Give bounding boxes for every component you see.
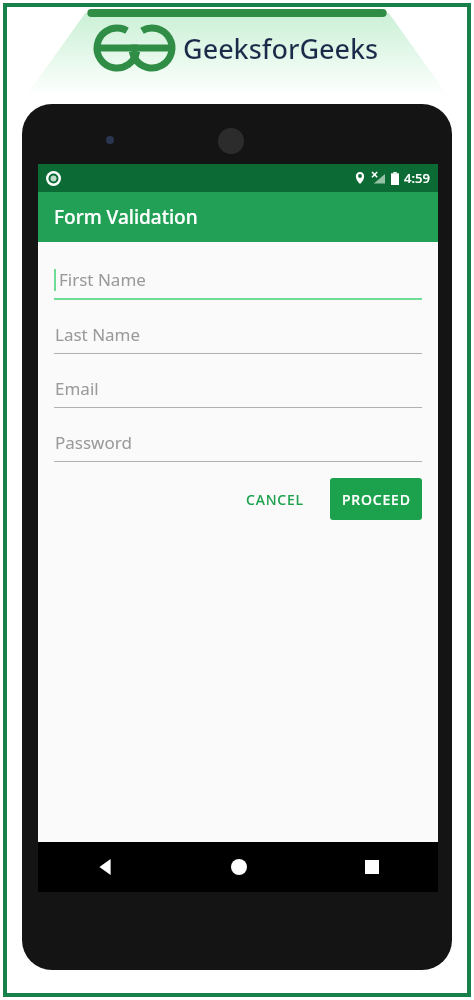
button[interactable]: CANCEL — [234, 479, 316, 520]
button[interactable]: Last Name — [54, 323, 422, 354]
staticText: Last Name — [55, 323, 141, 346]
staticText: Form Validation — [54, 204, 198, 230]
staticText: 4:59 — [404, 169, 430, 187]
button[interactable]: First Name — [54, 268, 422, 300]
staticText: PROCEED — [342, 490, 411, 509]
button[interactable]: Password — [54, 431, 422, 462]
staticText: Password — [55, 431, 132, 454]
button[interactable]: Back — [38, 842, 172, 892]
button[interactable]: Email — [54, 377, 422, 408]
button[interactable]: Home — [172, 842, 305, 892]
staticText: CANCEL — [246, 490, 304, 509]
button[interactable]: Recent apps — [305, 842, 438, 892]
staticText: GeeksforGeeks — [183, 30, 379, 67]
staticText: Email — [55, 377, 99, 400]
button[interactable]: PROCEED — [330, 478, 422, 520]
staticText: First Name — [59, 268, 146, 291]
